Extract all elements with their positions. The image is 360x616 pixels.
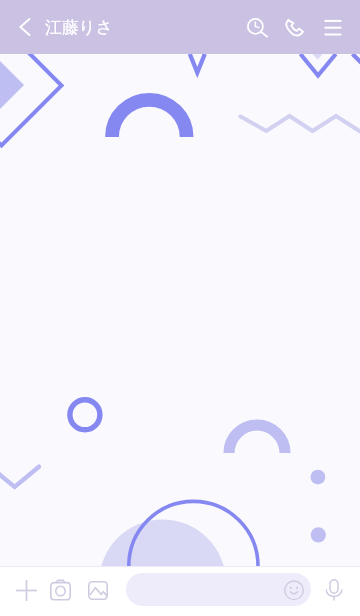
staticText: 江藤りさ	[45, 17, 113, 38]
button[interactable]: Gallery	[79, 571, 117, 609]
button[interactable]: Voice message	[315, 571, 353, 609]
button[interactable]: Menu	[320, 0, 360, 54]
button[interactable]: Camera	[41, 571, 79, 609]
button[interactable]: Call	[280, 0, 320, 54]
button[interactable]: Search	[240, 0, 280, 54]
button[interactable]: Back	[0, 0, 40, 54]
button[interactable]: Add	[7, 571, 45, 609]
button[interactable]	[126, 573, 311, 606]
